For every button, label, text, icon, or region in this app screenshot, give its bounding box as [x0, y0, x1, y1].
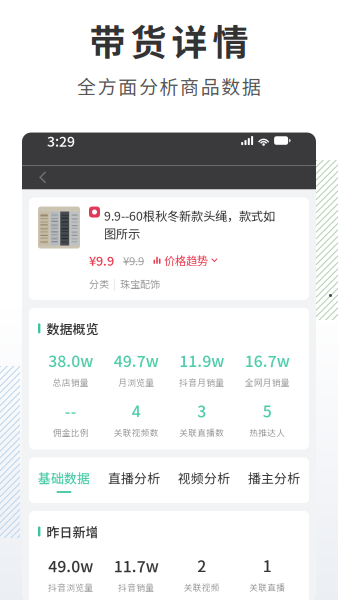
staticText: |: [113, 276, 116, 291]
staticText: 分类: [89, 276, 109, 291]
staticText: 珠宝配饰: [120, 276, 160, 291]
staticText: 基础数据: [38, 468, 90, 487]
staticText: 热推达人: [249, 426, 285, 438]
button[interactable]: Back: [28, 163, 58, 191]
staticText: ¥9.9: [123, 252, 144, 268]
staticText: 昨日新增: [46, 522, 98, 541]
button[interactable]: 基础数据: [29, 468, 99, 493]
staticText: 抖音销量: [118, 581, 154, 593]
staticText: 抖音月销量: [179, 376, 224, 388]
button[interactable]: 9.9--60根秋冬新款头绳，款式如图所示: [29, 197, 309, 300]
staticText: 关联视频: [184, 581, 220, 593]
staticText: 全方面分析商品数据: [77, 72, 261, 99]
staticText: 38.0w: [48, 349, 93, 372]
staticText: ¥9.9: [89, 251, 114, 269]
staticText: 抖音浏览量: [48, 581, 93, 593]
button[interactable]: 视频分析: [169, 468, 239, 493]
staticText: 4: [132, 399, 141, 422]
staticText: 3: [197, 399, 206, 422]
button[interactable]: 直播分析: [99, 468, 169, 493]
staticText: 带货详情: [89, 14, 248, 66]
staticText: 49.7w: [114, 349, 159, 372]
staticText: 佣金比例: [53, 426, 89, 438]
staticText: 直播分析: [108, 468, 160, 487]
staticText: 月浏览量: [118, 376, 154, 388]
button[interactable]: 播主分析: [239, 468, 309, 493]
button[interactable]: 价格趋势: [153, 252, 218, 268]
staticText: 播主分析: [248, 468, 300, 487]
staticText: 5: [263, 399, 272, 422]
staticText: --: [65, 399, 77, 422]
staticText: 全网月销量: [245, 376, 290, 388]
staticText: 11.9w: [179, 349, 224, 372]
staticText: 关联直播数: [179, 426, 224, 438]
staticText: 16.7w: [245, 349, 290, 372]
staticText: 关联直播: [249, 581, 285, 593]
staticText: 总店销量: [53, 376, 89, 388]
staticText: 关联视频数: [114, 426, 159, 438]
staticText: 11.7w: [114, 554, 159, 577]
staticText: 视频分析: [178, 468, 230, 487]
staticText: 9.9--60根秋冬新款头绳，款式如图所示: [104, 206, 275, 242]
staticText: 3:29: [47, 130, 75, 151]
staticText: 数据概览: [46, 319, 98, 338]
staticText: 价格趋势: [164, 252, 208, 268]
staticText: 2: [197, 554, 206, 577]
staticText: 1: [263, 554, 272, 577]
staticText: 49.0w: [48, 554, 93, 577]
